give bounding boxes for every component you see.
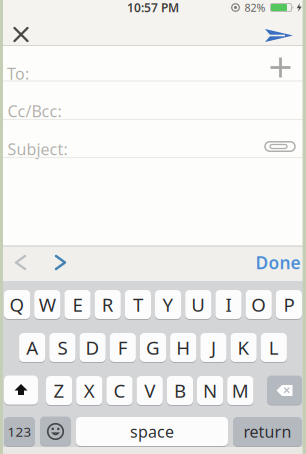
staticText: 10:57 PM [127, 0, 179, 15]
button[interactable]: A [0, 0, 306, 454]
staticText: D [86, 335, 100, 360]
button[interactable]: S [0, 0, 306, 454]
button[interactable]: L [0, 0, 306, 454]
button[interactable]: Attach file [264, 140, 296, 152]
button[interactable]: Q [0, 0, 306, 454]
staticText: I [225, 292, 231, 317]
staticText: G [146, 335, 160, 360]
button[interactable]: Add contact [270, 57, 290, 77]
staticText: H [176, 335, 190, 360]
button[interactable]: Done [255, 251, 300, 274]
staticText: T [133, 292, 143, 317]
button[interactable]: X [0, 0, 306, 454]
staticText: To: [7, 63, 29, 84]
button[interactable]: H [0, 0, 306, 454]
button[interactable]: 123 [0, 0, 306, 454]
button[interactable]: space [0, 0, 306, 454]
staticText: L [269, 335, 279, 360]
button[interactable]: B [0, 0, 306, 454]
staticText: F [118, 335, 128, 360]
button[interactable]: W [0, 0, 306, 454]
button[interactable]: U [0, 0, 306, 454]
button[interactable]: K [0, 0, 306, 454]
button[interactable]: N [0, 0, 306, 454]
button[interactable]: O [0, 0, 306, 454]
staticText: Y [163, 292, 174, 317]
staticText: S [57, 335, 67, 360]
staticText: Cc/Bcc: [7, 100, 61, 122]
button[interactable]: Shift [4, 375, 38, 405]
staticText: U [191, 292, 205, 317]
staticText: K [238, 335, 250, 360]
staticText: 123 [7, 423, 31, 440]
button[interactable]: F [0, 0, 306, 454]
staticText: O [251, 292, 266, 317]
button[interactable]: I [0, 0, 306, 454]
staticText: return [243, 421, 291, 442]
button[interactable]: T [0, 0, 306, 454]
staticText: B [174, 378, 186, 403]
button[interactable]: J [0, 0, 306, 454]
button[interactable]: Next field [56, 256, 66, 270]
button[interactable]: V [0, 0, 306, 454]
button[interactable]: Y [0, 0, 306, 454]
button[interactable]: Z [0, 0, 306, 454]
button[interactable]: return [0, 0, 306, 454]
staticText: J [211, 335, 216, 360]
button[interactable]: R [0, 0, 306, 454]
staticText: Q [10, 292, 25, 317]
staticText: X [84, 378, 95, 403]
staticText: V [144, 378, 155, 403]
staticText: C [113, 378, 125, 403]
staticText: space [130, 421, 174, 442]
button[interactable]: P [0, 0, 306, 454]
button[interactable]: Delete [267, 375, 302, 405]
staticText: N [203, 378, 217, 403]
staticText: R [102, 292, 114, 317]
button[interactable]: M [0, 0, 306, 454]
staticText: A [26, 335, 38, 360]
staticText: W [39, 292, 56, 317]
staticText: M [232, 378, 249, 403]
staticText: Z [54, 378, 65, 403]
button[interactable]: Send [264, 26, 294, 44]
staticText: 82% [244, 0, 265, 15]
staticText: Done [255, 251, 300, 274]
button[interactable]: D [0, 0, 306, 454]
staticText: Subject: [7, 138, 67, 160]
button[interactable]: G [0, 0, 306, 454]
staticText: E [72, 292, 82, 317]
button[interactable]: E [0, 0, 306, 454]
button[interactable]: C [0, 0, 306, 454]
button[interactable]: Emoji [40, 416, 71, 446]
button[interactable]: Close [11, 24, 31, 44]
staticText: P [283, 292, 294, 317]
button[interactable]: Previous field [16, 256, 26, 270]
